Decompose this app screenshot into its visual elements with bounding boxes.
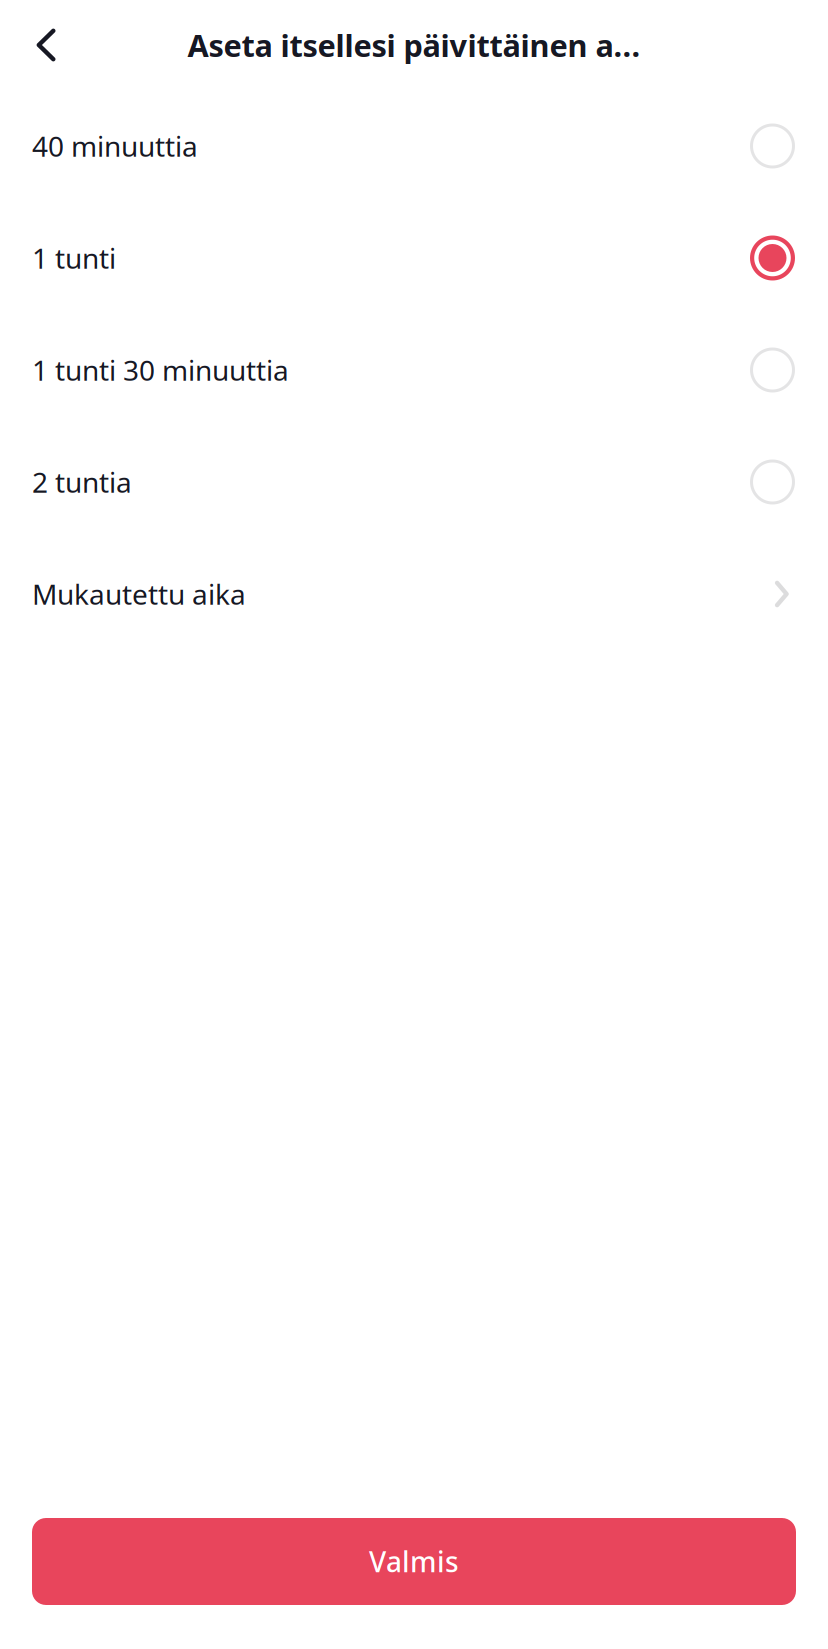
button[interactable]: Mukautettu aika — [0, 538, 828, 650]
button[interactable]: 1 tunti 30 minuuttia — [0, 314, 828, 426]
staticText: 2 tuntia — [32, 463, 132, 501]
staticText: Valmis — [369, 1543, 459, 1580]
staticText: Mukautettu aika — [32, 575, 246, 613]
button[interactable]: Valmis — [32, 1518, 796, 1605]
staticText: Aseta itsellesi päivittäinen a... — [187, 25, 640, 65]
button[interactable]: 1 tunti — [0, 202, 828, 314]
staticText: 1 tunti 30 minuuttia — [32, 351, 289, 389]
staticText: 1 tunti — [32, 239, 116, 277]
button[interactable]: 40 minuuttia — [0, 90, 828, 202]
button[interactable]: Back — [16, 14, 76, 76]
staticText: 40 minuuttia — [32, 127, 198, 165]
button[interactable]: 2 tuntia — [0, 426, 828, 538]
